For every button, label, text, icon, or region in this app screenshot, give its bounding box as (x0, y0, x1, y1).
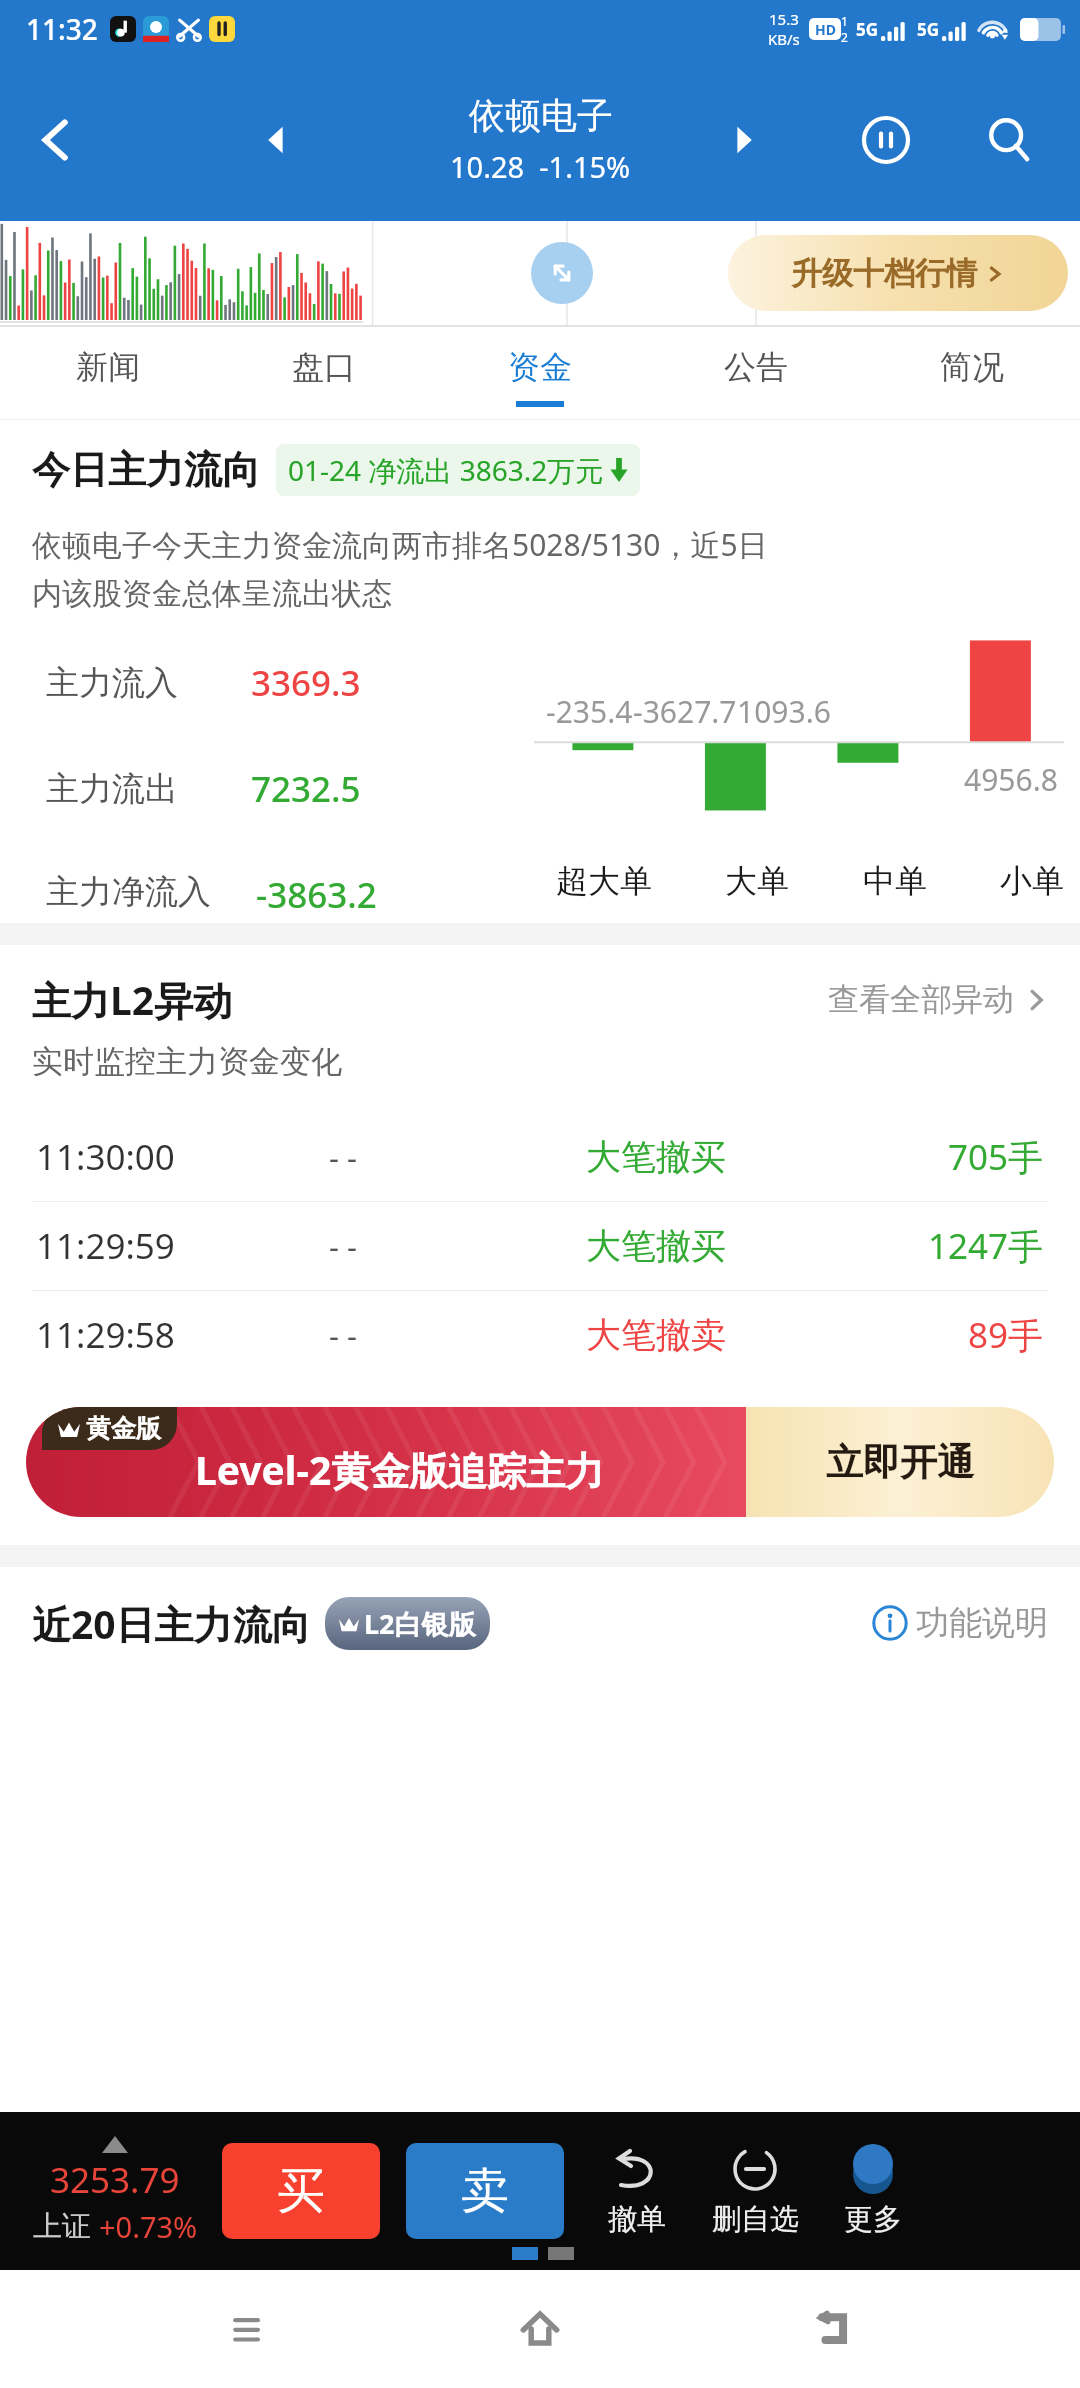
staticText: 更多 (844, 2201, 902, 2238)
staticText: 小单 (1000, 861, 1064, 901)
button[interactable]: Next stock (708, 104, 780, 176)
staticText: 实时监控主力资金变化 (32, 1042, 342, 1081)
staticText: 撤单 (608, 2201, 666, 2238)
staticText: 大笔撤买 (586, 1224, 726, 1268)
staticText: -3863.2 (256, 871, 377, 913)
staticText: 盘口 (292, 347, 356, 387)
staticText: 01-24 净流出 3863.2万元 (288, 451, 604, 489)
staticText: 1247手 (928, 1222, 1044, 1270)
button[interactable]: 新闻 (0, 327, 216, 419)
button[interactable]: 3253.79 (16, 2136, 214, 2246)
button[interactable]: 简况 (864, 327, 1080, 419)
staticText: 卖 (461, 2161, 509, 2221)
staticText: 2 (841, 29, 848, 45)
staticText: -235.4 (546, 691, 633, 732)
staticText: 1 (841, 13, 848, 29)
staticText: 功能说明 (916, 1602, 1048, 1644)
staticText: 依顿电子今天主力资金流向两市排名5028/5130，近5日 (32, 524, 768, 565)
staticText: 主力流入 (46, 662, 178, 704)
staticText: 1093.6 (737, 691, 831, 732)
staticText: 4956.8 (964, 759, 1058, 800)
staticText: 公告 (724, 347, 788, 387)
staticText: 89手 (968, 1311, 1044, 1359)
staticText: 7232.5 (251, 765, 361, 813)
staticText: 3253.79 (50, 2156, 180, 2204)
button[interactable]: 功能说明 (872, 1602, 1048, 1644)
staticText: 大笔撤卖 (586, 1313, 726, 1357)
button[interactable]: 盘口 (216, 327, 432, 419)
staticText: 主力流出 (46, 768, 178, 810)
staticText: 15.3 (769, 9, 799, 29)
button[interactable]: More options (844, 98, 928, 182)
button[interactable]: Recent apps (201, 2283, 293, 2375)
button[interactable]: Home (494, 2283, 586, 2375)
button[interactable]: 买 (222, 2143, 380, 2239)
staticText: 今日主力流向 (32, 446, 260, 494)
staticText: 11:32 (26, 10, 98, 48)
button[interactable]: L2白银版 (325, 1597, 490, 1650)
staticText: 11:30:00 (36, 1133, 175, 1181)
button[interactable]: 卖 (406, 2143, 564, 2239)
staticText: 简况 (940, 347, 1004, 387)
staticText: 资金 (508, 347, 572, 387)
staticText: 中单 (863, 861, 927, 901)
staticText: 5G (856, 18, 879, 41)
staticText: 查看全部异动 (828, 980, 1014, 1019)
staticText: - - (329, 1136, 358, 1178)
staticText: 立即开通 (826, 1439, 974, 1486)
button[interactable]: Level-2黄金版追踪主力 (26, 1407, 1054, 1517)
staticText: 大笔撤买 (586, 1135, 726, 1179)
staticText: - - (329, 1314, 358, 1356)
staticText: 依顿电子 (469, 93, 613, 138)
staticText: 大单 (725, 861, 789, 901)
button[interactable]: 查看全部异动 (828, 980, 1048, 1019)
button[interactable]: 11:29:58 (0, 1291, 1080, 1379)
button[interactable]: 11:30:00 (0, 1113, 1080, 1201)
staticText: 11:29:58 (36, 1311, 175, 1359)
staticText: HD (815, 20, 836, 39)
staticText: 主力L2异动 (32, 973, 233, 1026)
staticText: +0.73% (99, 2207, 198, 2246)
staticText: 黄金版 (86, 1413, 161, 1444)
staticText: - - (329, 1225, 358, 1267)
staticText: 10.28 -1.15% (450, 147, 631, 186)
staticText: 升级十档行情 (791, 254, 977, 293)
staticText: 主力净流入 (46, 871, 211, 913)
button[interactable]: 更多 (814, 2145, 932, 2238)
button[interactable]: Back (18, 102, 94, 178)
staticText: L2白银版 (364, 1605, 476, 1642)
button[interactable]: Expand chart (531, 242, 593, 304)
button[interactable]: 11:29:59 (0, 1202, 1080, 1290)
staticText: 近20日主力流向 (32, 1597, 311, 1650)
button[interactable]: 撤单 (578, 2145, 696, 2238)
staticText: -3627.7 (633, 691, 737, 732)
staticText: KB/s (768, 29, 800, 49)
staticText: 超大单 (556, 861, 652, 901)
staticText: 买 (277, 2161, 325, 2221)
staticText: 11:29:59 (36, 1222, 175, 1270)
staticText: 3369.3 (251, 659, 361, 707)
staticText: Level-2黄金版追踪主力 (195, 1443, 605, 1496)
staticText: 上证 (33, 2208, 91, 2245)
button[interactable]: Back (787, 2283, 879, 2375)
staticText: 新闻 (76, 347, 140, 387)
button[interactable]: Previous stock (240, 104, 312, 176)
button[interactable]: 公告 (648, 327, 864, 419)
button[interactable]: 资金 (432, 327, 648, 419)
staticText: 705手 (948, 1133, 1044, 1181)
staticText: 内该股资金总体呈流出状态 (32, 575, 392, 613)
staticText: 5G (917, 18, 940, 41)
staticText: 删自选 (712, 2201, 799, 2238)
button[interactable]: Search (968, 98, 1052, 182)
button[interactable]: 删自选 (696, 2145, 814, 2238)
button[interactable]: 升级十档行情 (728, 235, 1068, 311)
